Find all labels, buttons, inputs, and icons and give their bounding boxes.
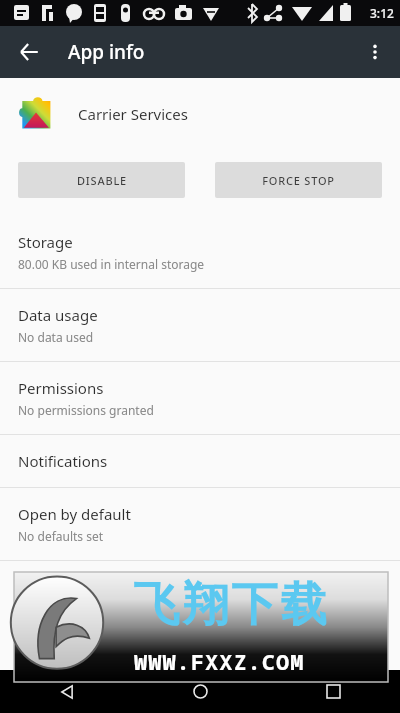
staticText: No data used	[18, 329, 94, 345]
staticText: WWW.FXXZ.COM	[134, 646, 305, 676]
button[interactable]: Back	[0, 670, 134, 713]
button[interactable]: Notifications	[0, 435, 400, 487]
staticText: No battery use since last full charge	[18, 601, 219, 617]
button[interactable]: DISABLE	[18, 162, 185, 198]
staticText: Data usage	[18, 305, 98, 325]
staticText: Battery	[18, 577, 70, 597]
button[interactable]: Recent apps	[267, 670, 400, 713]
staticText: Storage	[18, 232, 73, 252]
button[interactable]: Open by default	[0, 488, 400, 560]
staticText: App info	[68, 39, 145, 65]
button[interactable]: Storage	[0, 216, 400, 288]
staticText: FORCE STOP	[262, 173, 335, 188]
button[interactable]: Battery	[0, 561, 400, 633]
staticText: Carrier Services	[78, 104, 188, 124]
staticText: Open by default	[18, 504, 131, 524]
button[interactable]: Data usage	[0, 289, 400, 361]
staticText: No permissions granted	[18, 402, 154, 418]
button[interactable]: Back	[8, 31, 50, 73]
button[interactable]: FORCE STOP	[215, 162, 382, 198]
button[interactable]: Home	[134, 670, 267, 713]
staticText: No defaults set	[18, 528, 104, 544]
staticText: 3:12	[370, 5, 394, 21]
staticText: Notifications	[18, 451, 108, 471]
button[interactable]: Permissions	[0, 362, 400, 434]
staticText: 飞翔下载	[132, 576, 328, 634]
staticText: DISABLE	[77, 173, 127, 188]
staticText: Permissions	[18, 378, 104, 398]
button[interactable]: More options	[354, 31, 396, 73]
staticText: 80.00 KB used in internal storage	[18, 256, 205, 272]
